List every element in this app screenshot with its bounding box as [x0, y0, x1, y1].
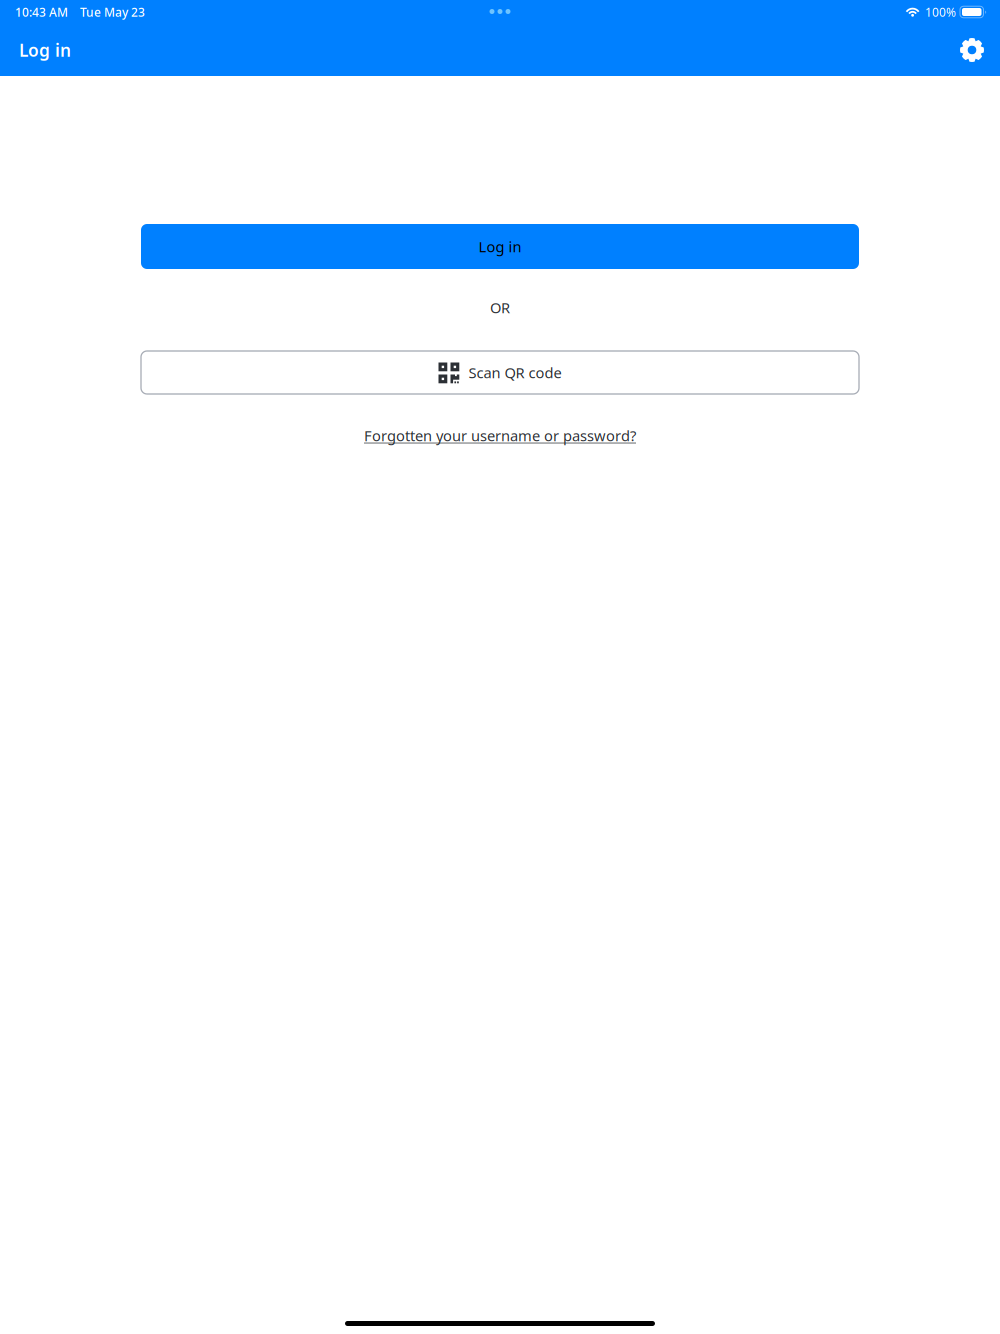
- staticText: Scan QR code: [468, 363, 561, 382]
- staticText: 100%: [925, 4, 956, 20]
- button[interactable]: Scan QR code: [141, 351, 859, 394]
- staticText: OR: [490, 298, 510, 317]
- staticText: Log in: [19, 38, 71, 61]
- staticText: Tue May 23: [80, 4, 145, 20]
- staticText: Log in: [478, 237, 521, 256]
- staticText: Forgotten your username or password?: [364, 426, 636, 445]
- button[interactable]: Forgotten your username or password?: [364, 427, 636, 444]
- staticText: 10:43 AM: [15, 4, 68, 20]
- button[interactable]: Log in: [141, 224, 859, 269]
- button[interactable]: Settings: [952, 30, 992, 70]
